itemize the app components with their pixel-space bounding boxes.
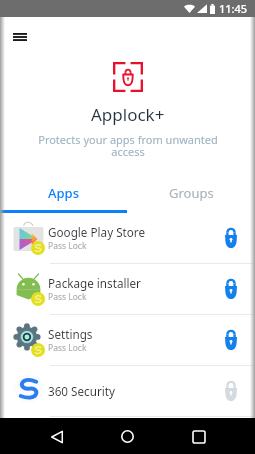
button[interactable]: Recents — [181, 419, 216, 454]
button[interactable]: 360 Security — [0, 366, 255, 417]
staticText: Protects your apps from unwanted access — [37, 132, 219, 159]
staticText: 11:45 — [219, 1, 248, 16]
staticText: Settings — [48, 326, 93, 342]
staticText: Pass Lock — [48, 291, 87, 303]
staticText: Pass Lock — [48, 240, 87, 252]
staticText: Google Play Store — [48, 224, 146, 240]
button[interactable]: Back — [39, 419, 74, 454]
staticText: Applock+ — [91, 103, 165, 126]
button[interactable]: Google Play Store — [0, 213, 255, 264]
staticText: Pass Lock — [48, 342, 87, 354]
staticText: Groups — [169, 184, 214, 202]
staticText: Package installer — [48, 275, 141, 291]
button[interactable]: Groups — [127, 176, 255, 210]
button[interactable]: Locked — [219, 328, 243, 352]
button[interactable]: Menu — [5, 22, 35, 52]
button[interactable]: Locked — [219, 226, 243, 250]
staticText: 360 Security — [48, 383, 115, 399]
staticText: Apps — [48, 184, 79, 202]
button[interactable]: Apps — [0, 176, 127, 210]
button[interactable]: Package installer — [0, 264, 255, 315]
button[interactable]: Settings — [0, 315, 255, 366]
button[interactable]: Locked — [219, 277, 243, 301]
button[interactable]: Unlocked — [219, 379, 243, 403]
button[interactable]: Home — [110, 419, 145, 454]
